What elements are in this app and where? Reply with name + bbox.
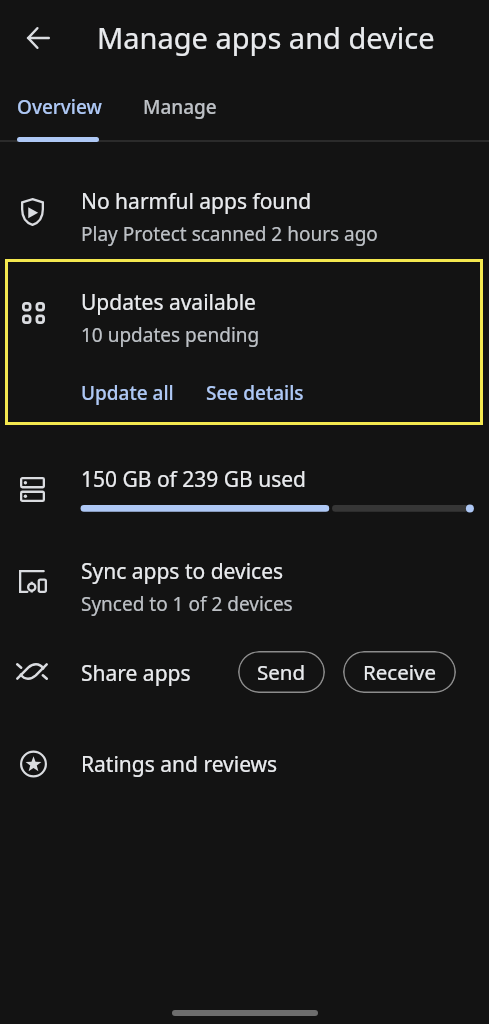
- staticText: Receive: [363, 658, 436, 686]
- staticText: Manage: [143, 94, 217, 120]
- button[interactable]: See details: [197, 373, 313, 413]
- button[interactable]: Receive: [343, 651, 456, 693]
- staticText: Sync apps to devices: [81, 557, 284, 586]
- staticText: Share apps: [81, 659, 191, 688]
- button[interactable]: Share apps: [72, 652, 200, 695]
- button[interactable]: Overview: [0, 84, 118, 130]
- button[interactable]: [0, 730, 489, 798]
- staticText: 150 GB of 239 GB used: [81, 465, 306, 494]
- staticText: Overview: [17, 94, 102, 120]
- button[interactable]: Back: [14, 14, 62, 62]
- button[interactable]: [0, 168, 489, 254]
- staticText: Updates available: [81, 288, 256, 317]
- staticText: Send: [257, 658, 306, 686]
- button[interactable]: [5, 259, 483, 425]
- staticText: Update all: [81, 380, 174, 406]
- staticText: No harmful apps found: [81, 187, 312, 216]
- staticText: 10 updates pending: [81, 322, 260, 348]
- staticText: Synced to 1 of 2 devices: [81, 591, 293, 617]
- button[interactable]: [0, 538, 489, 622]
- staticText: Ratings and reviews: [81, 750, 278, 779]
- button[interactable]: Update all: [72, 373, 183, 413]
- button[interactable]: [0, 440, 489, 526]
- button[interactable]: Manage: [125, 84, 235, 130]
- staticText: Manage apps and device: [97, 18, 435, 57]
- staticText: See details: [206, 380, 304, 406]
- button[interactable]: Send: [238, 651, 325, 693]
- staticText: Play Protect scanned 2 hours ago: [81, 221, 378, 247]
